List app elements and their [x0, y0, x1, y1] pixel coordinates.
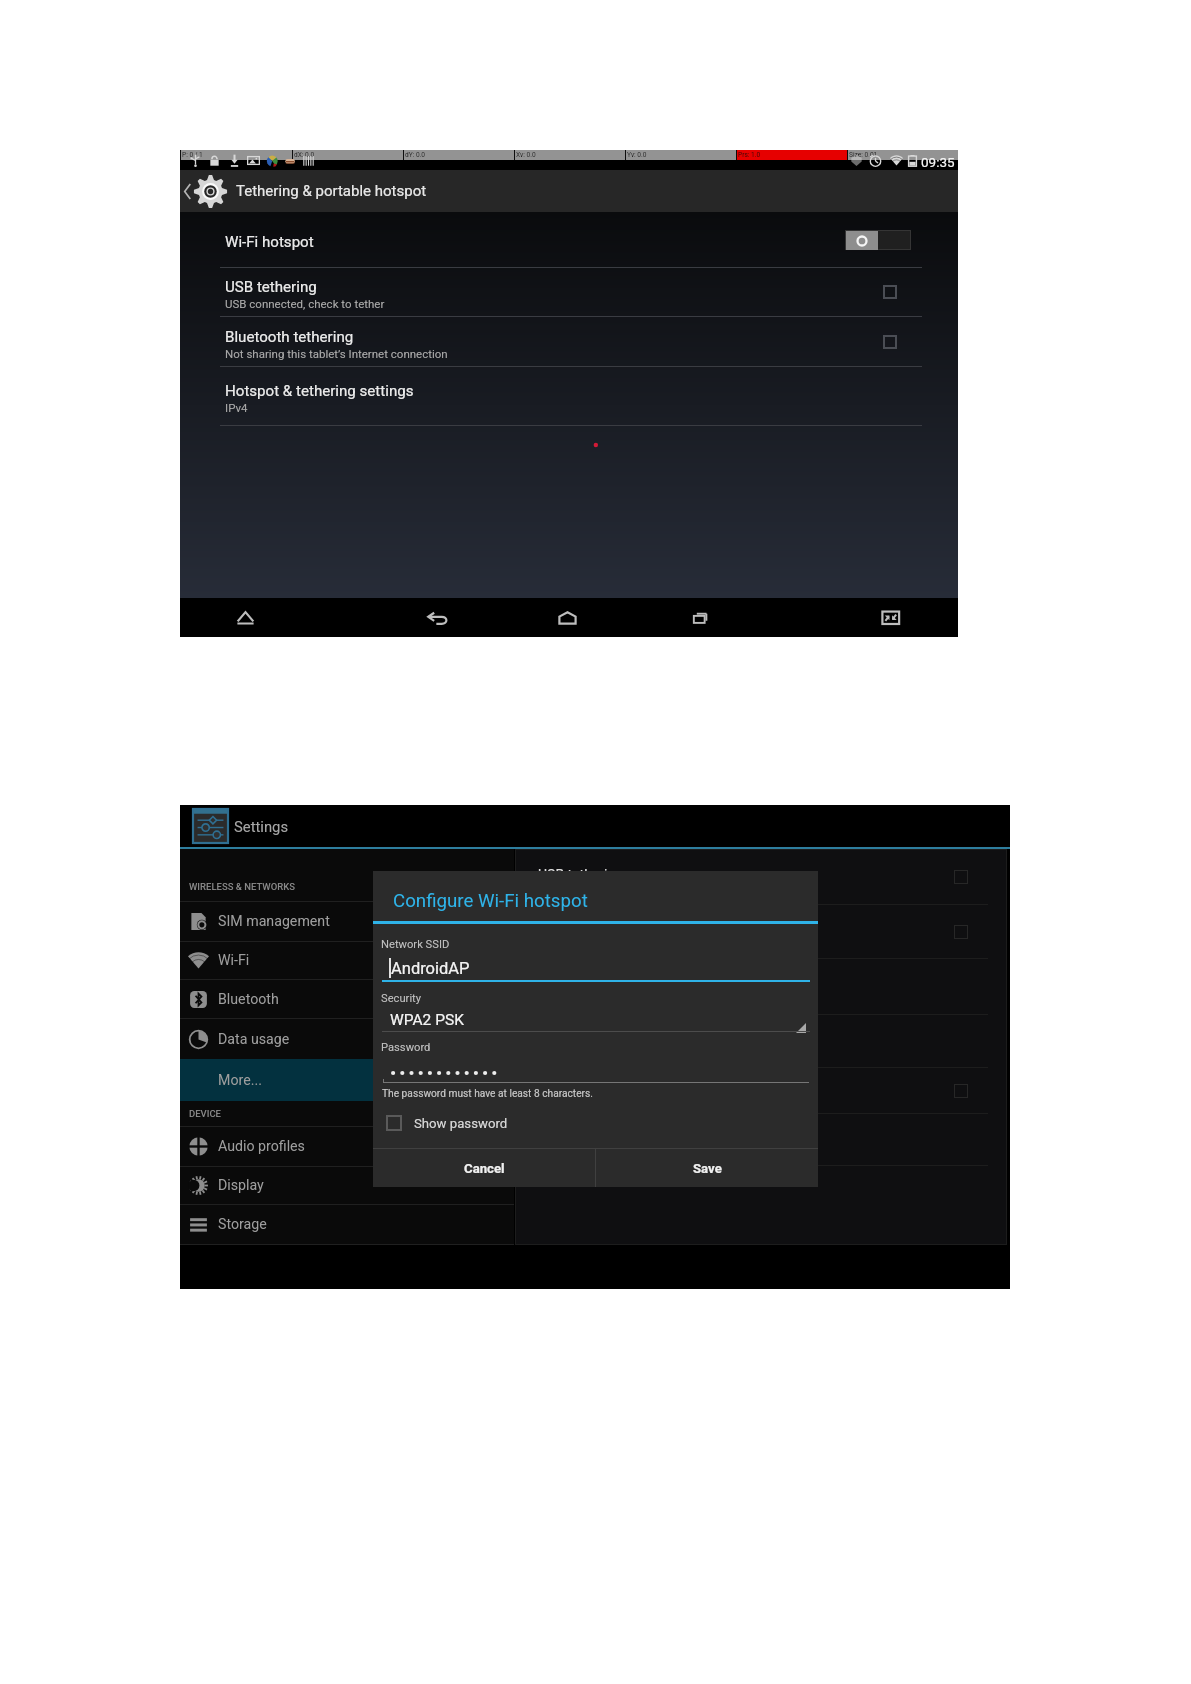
staticText: Prs: 1.0: [738, 151, 761, 159]
staticText: 09:35: [921, 154, 955, 170]
staticText: Audio profiles: [218, 1138, 305, 1155]
staticText: Not sharing this tablet’s Internet conne…: [225, 347, 448, 360]
staticText: dY: 0.0: [405, 151, 426, 159]
button[interactable]: Audio profiles: [180, 1127, 514, 1166]
button[interactable]: Back: [423, 598, 454, 637]
staticText: DEVICE: [189, 1108, 221, 1119]
button[interactable]: SIM management: [180, 902, 514, 941]
button[interactable]: Show password: [386, 1115, 508, 1131]
staticText: Cancel: [464, 1161, 505, 1176]
button[interactable]: USB tethering: [180, 268, 958, 316]
staticText: Show password: [414, 1116, 508, 1131]
staticText: WIRELESS & NETWORKS: [189, 881, 295, 892]
button[interactable]: Display: [180, 1167, 514, 1204]
button[interactable]: Cancel: [373, 1149, 595, 1187]
staticText: Password: [381, 1041, 431, 1054]
button[interactable]: Bluetooth: [180, 980, 514, 1018]
staticText: SIM management: [218, 913, 330, 930]
staticText: Bluetooth: [218, 991, 279, 1008]
staticText: Display: [218, 1177, 264, 1194]
other: Back: [184, 184, 191, 199]
button[interactable]: Checkbox: [883, 285, 897, 299]
staticText: Settings: [234, 818, 289, 835]
staticText: Bluetooth tethering: [225, 328, 354, 346]
button[interactable]: Back: [180, 170, 958, 212]
button[interactable]: More...: [180, 1059, 514, 1101]
button[interactable]: Save: [596, 1149, 818, 1187]
staticText: P: 0 / 1: [182, 151, 203, 159]
button[interactable]: Wi-Fi hotspot switch: [845, 230, 911, 250]
staticText: Wi-Fi: [218, 952, 250, 969]
staticText: USB tethering: [538, 867, 624, 883]
button[interactable]: Storage: [180, 1205, 514, 1244]
staticText: Yv: 0.0: [627, 151, 647, 159]
staticText: Save: [693, 1161, 722, 1176]
staticText: Security: [381, 992, 422, 1005]
button[interactable]: Data usage: [180, 1019, 514, 1059]
staticText: Xv: 0.0: [516, 151, 536, 159]
staticText: Size: 0.01: [849, 151, 878, 159]
staticText: WPA2 PSK: [390, 1011, 464, 1029]
staticText: Network SSID: [381, 938, 450, 951]
staticText: USB connected, check to tether: [225, 297, 385, 310]
button[interactable]: Security spinner: [796, 1023, 806, 1033]
button[interactable]: Wi-Fi hotspot: [180, 212, 958, 267]
button[interactable]: Hotspot & tethering settings: [180, 367, 958, 425]
button[interactable]: Checkbox: [883, 335, 897, 349]
staticText: The password must have at least 8 charac…: [382, 1088, 593, 1100]
button[interactable]: Home: [552, 598, 583, 637]
staticText: Tethering & portable hotspot: [236, 182, 427, 200]
button[interactable]: Eject: [230, 598, 261, 637]
staticText: Hotspot & tethering settings: [225, 382, 414, 400]
button[interactable]: Settings: [180, 805, 1010, 847]
button[interactable]: Recents: [684, 598, 715, 637]
button[interactable]: Wi-Fi: [180, 942, 514, 979]
staticText: AndroidAP: [391, 959, 470, 978]
button[interactable]: Bluetooth tethering: [180, 317, 958, 366]
staticText: Configure Wi-Fi hotspot: [393, 890, 588, 912]
staticText: Data usage: [218, 1031, 290, 1048]
button[interactable]: Resize: [875, 598, 906, 637]
staticText: Storage: [218, 1216, 267, 1233]
staticText: Wi-Fi hotspot: [225, 233, 314, 251]
staticText: USB tethering: [225, 278, 317, 296]
staticText: More...: [218, 1072, 262, 1089]
staticText: dX: 0.0: [294, 151, 315, 159]
staticText: IPv4: [225, 401, 248, 414]
